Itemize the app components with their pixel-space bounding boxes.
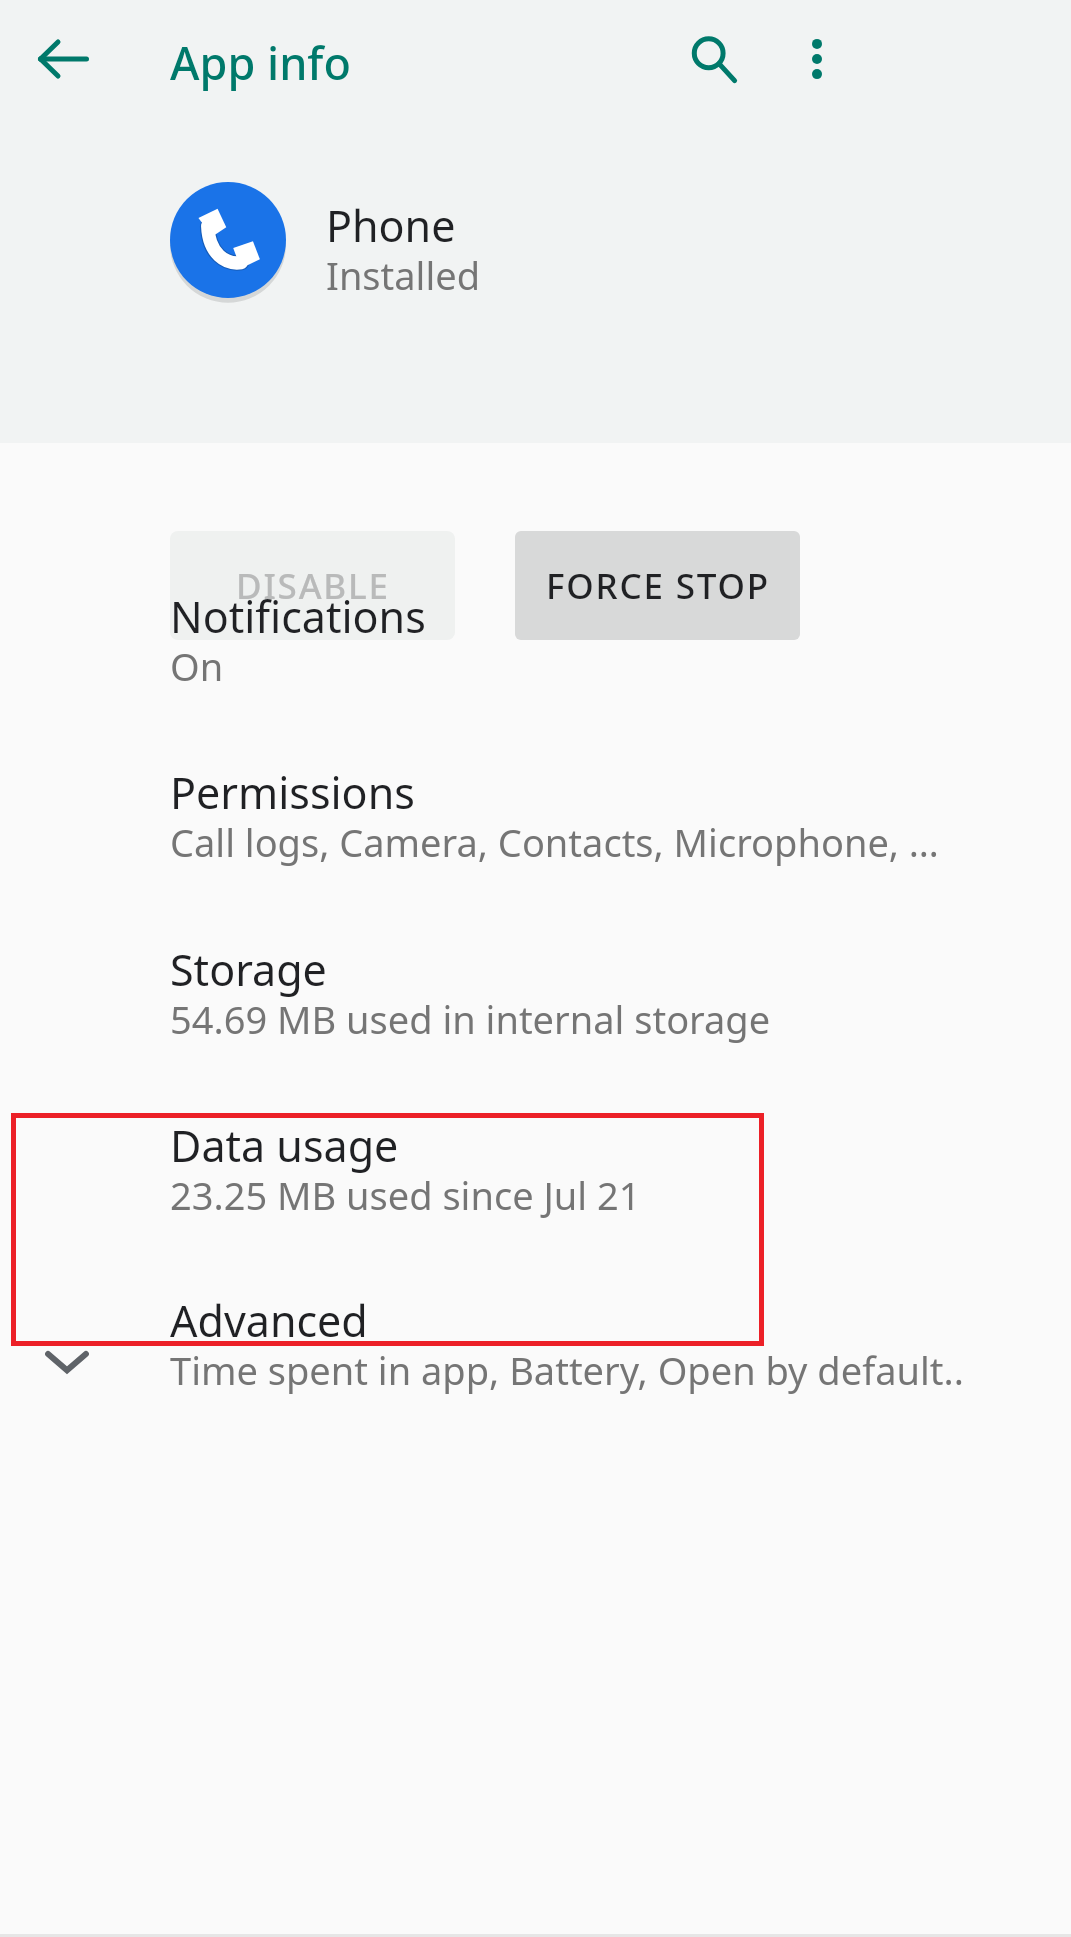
staticText: 54.69 MB used in internal storage — [170, 993, 771, 1045]
staticText: DISABLE — [236, 562, 390, 610]
staticText: On — [170, 640, 224, 692]
staticText: Installed — [326, 249, 481, 301]
button[interactable]: FORCE STOP — [515, 531, 800, 640]
button[interactable]: Search — [666, 12, 760, 106]
staticText: App info — [170, 32, 351, 93]
staticText: Advanced — [170, 1291, 368, 1350]
button[interactable]: More options — [770, 12, 864, 106]
staticText: Call logs, Camera, Contacts, Microphone,… — [170, 816, 939, 868]
button[interactable]: Storage — [0, 937, 1071, 1113]
staticText: Storage — [170, 940, 327, 999]
staticText: Notifications — [170, 587, 426, 646]
staticText: Data usage — [170, 1116, 399, 1175]
button[interactable]: Data usage — [0, 1113, 1071, 1289]
staticText: Time spent in app, Battery, Open by defa… — [170, 1344, 964, 1396]
button[interactable]: Navigate up — [16, 12, 110, 106]
staticText: FORCE STOP — [546, 562, 770, 610]
button[interactable]: DISABLE — [170, 531, 455, 640]
staticText: Permissions — [170, 763, 415, 822]
button[interactable]: Notifications — [0, 584, 1071, 760]
staticText: 23.25 MB used since Jul 21 — [170, 1169, 641, 1221]
button[interactable]: Advanced — [0, 1288, 1071, 1464]
button[interactable]: Permissions — [0, 760, 1071, 936]
staticText: Phone — [326, 196, 456, 255]
